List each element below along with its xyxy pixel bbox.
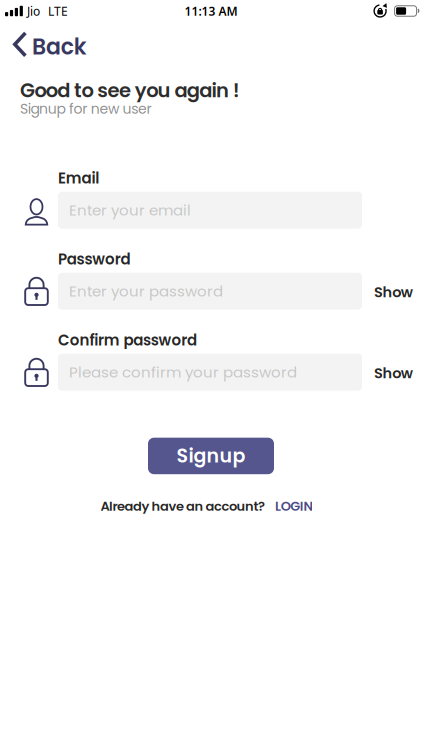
staticText: Please confirm your password xyxy=(69,362,297,383)
staticText: Enter your email xyxy=(69,200,191,221)
staticText: Signup for new user xyxy=(20,99,152,119)
button[interactable]: Show xyxy=(374,281,413,301)
button[interactable]: LOGIN xyxy=(275,497,313,515)
staticText: Good to see you again ! xyxy=(20,77,240,104)
staticText: 11:13 AM xyxy=(184,3,237,19)
staticText: Enter your password xyxy=(69,281,223,302)
button[interactable]: Enter your email xyxy=(58,192,362,229)
staticText: Back xyxy=(32,31,87,62)
staticText: LOGIN xyxy=(275,497,313,515)
staticText: Jio xyxy=(27,3,40,19)
staticText: Already have an account? xyxy=(101,497,265,515)
staticText: Confirm password xyxy=(58,330,197,351)
staticText: Email xyxy=(58,168,99,189)
button[interactable]: Back xyxy=(0,29,87,60)
button[interactable]: Show xyxy=(374,362,413,382)
staticText: Password xyxy=(58,249,131,270)
staticText: Show xyxy=(374,282,413,302)
button[interactable]: Please confirm your password xyxy=(58,354,362,391)
button[interactable]: Signup xyxy=(148,438,274,474)
staticText: LTE xyxy=(48,3,68,19)
button[interactable]: Enter your password xyxy=(58,273,362,310)
staticText: Show xyxy=(374,363,413,383)
staticText: Signup xyxy=(176,443,245,469)
